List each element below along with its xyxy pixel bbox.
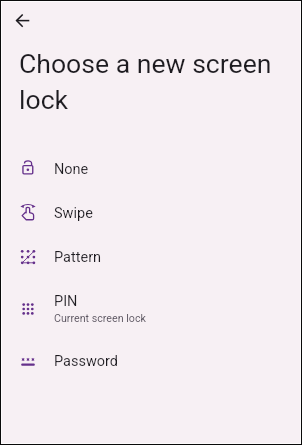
button[interactable]: PIN — [2, 279, 300, 339]
staticText: Current screen lock — [54, 312, 146, 325]
staticText: Password — [54, 353, 119, 370]
staticText: Pattern — [54, 249, 102, 266]
button[interactable]: Swipe — [2, 191, 300, 235]
staticText: None — [54, 161, 89, 178]
button[interactable]: None — [2, 147, 300, 191]
staticText: Choose a new screen lock — [19, 48, 281, 115]
button[interactable]: Password — [2, 339, 300, 383]
staticText: PIN — [54, 293, 78, 310]
button[interactable]: Navigate up — [13, 11, 39, 37]
button[interactable]: Pattern — [2, 235, 300, 279]
staticText: Swipe — [54, 205, 93, 222]
